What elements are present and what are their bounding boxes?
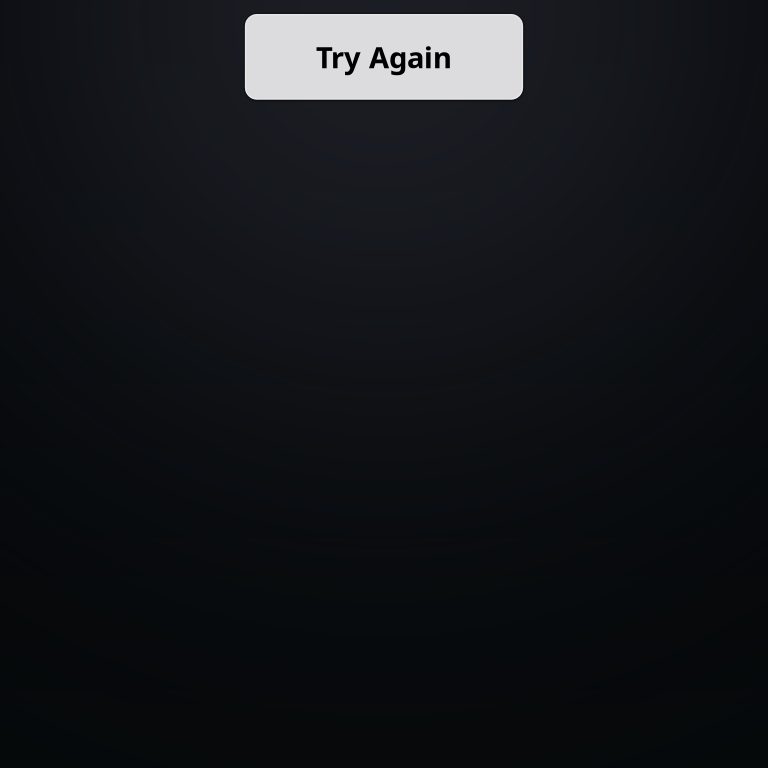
staticText: Try Again (316, 37, 452, 77)
button[interactable]: Try Again (245, 14, 523, 100)
